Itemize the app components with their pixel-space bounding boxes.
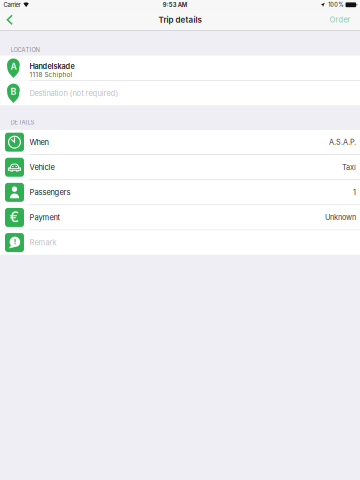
- button[interactable]: Remark: [0, 230, 360, 255]
- staticText: 9:53 AM: [163, 1, 187, 8]
- staticText: Handelskade: [29, 62, 74, 71]
- staticText: Taxi: [342, 163, 356, 172]
- staticText: When: [29, 138, 48, 147]
- staticText: DETAILS: [11, 119, 35, 126]
- button[interactable]: When: [0, 130, 360, 154]
- staticText: Destination (not required): [29, 89, 118, 98]
- staticText: Trip details: [158, 15, 201, 25]
- button[interactable]: Passengers: [0, 180, 360, 205]
- button[interactable]: A: [0, 56, 360, 80]
- staticText: 100%: [328, 1, 343, 8]
- button[interactable]: Order: [322, 10, 360, 30]
- staticText: B: [10, 86, 16, 97]
- staticText: LOCATION: [11, 46, 40, 53]
- staticText: Remark: [29, 238, 56, 247]
- staticText: A.S.A.P.: [329, 138, 356, 147]
- button[interactable]: Vehicle: [0, 155, 360, 179]
- button[interactable]: Back: [0, 10, 21, 30]
- staticText: €: [9, 209, 19, 226]
- staticText: Order: [330, 15, 351, 24]
- staticText: Vehicle: [29, 163, 54, 172]
- button[interactable]: €: [0, 205, 360, 230]
- staticText: 1: [353, 188, 356, 197]
- staticText: 1118 Schiphol: [29, 71, 72, 78]
- button[interactable]: B: [0, 81, 360, 105]
- staticText: Payment: [29, 213, 59, 222]
- staticText: Carrier: [4, 1, 21, 8]
- staticText: A: [10, 61, 16, 72]
- staticText: Passengers: [29, 188, 70, 197]
- staticText: Unknown: [325, 213, 356, 222]
